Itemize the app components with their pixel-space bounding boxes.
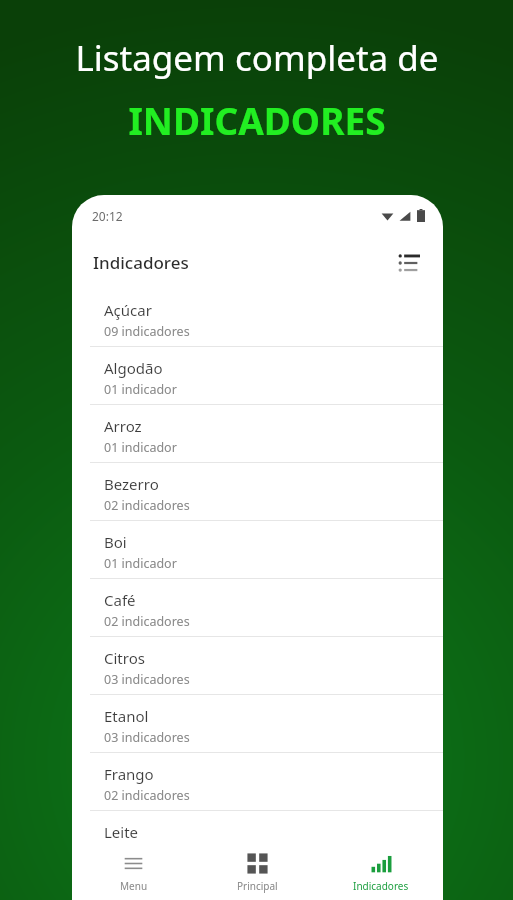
button[interactable]: Menu bbox=[72, 845, 195, 900]
button[interactable]: Indicadores bbox=[319, 845, 443, 900]
button[interactable]: Boi bbox=[72, 521, 443, 578]
staticText: INDICADORES bbox=[128, 95, 386, 145]
button[interactable]: Etanol bbox=[72, 695, 443, 752]
button[interactable]: Leite bbox=[72, 811, 443, 845]
staticText: 02 indicadores bbox=[104, 787, 190, 804]
button[interactable]: Ordenar lista bbox=[389, 243, 429, 283]
staticText: Citros bbox=[104, 648, 145, 668]
staticText: 02 indicadores bbox=[104, 497, 190, 514]
staticText: 02 indicadores bbox=[104, 613, 190, 630]
button[interactable]: Citros bbox=[72, 637, 443, 694]
staticText: 01 indicador bbox=[104, 439, 177, 456]
staticText: Açúcar bbox=[104, 300, 152, 320]
button[interactable]: Frango bbox=[72, 753, 443, 810]
button[interactable]: Principal bbox=[195, 845, 319, 900]
staticText: Café bbox=[104, 590, 136, 610]
staticText: Bezerro bbox=[104, 474, 159, 494]
staticText: Frango bbox=[104, 764, 154, 784]
staticText: 09 indicadores bbox=[104, 323, 190, 340]
button[interactable]: Bezerro bbox=[72, 463, 443, 520]
staticText: Boi bbox=[104, 532, 127, 552]
staticText: Leite bbox=[104, 822, 139, 842]
staticText: 01 indicador bbox=[104, 555, 177, 572]
staticText: Menu bbox=[120, 879, 148, 893]
staticText: 20:12 bbox=[92, 208, 123, 224]
button[interactable]: Algodão bbox=[72, 347, 443, 404]
staticText: Listagem completa de bbox=[75, 34, 439, 82]
staticText: Principal bbox=[237, 879, 278, 893]
staticText: Arroz bbox=[104, 416, 142, 436]
button[interactable]: Açúcar bbox=[72, 289, 443, 346]
staticText: 03 indicadores bbox=[104, 671, 190, 688]
staticText: 03 indicadores bbox=[104, 729, 190, 746]
staticText: Indicadores bbox=[93, 251, 189, 274]
staticText: Etanol bbox=[104, 706, 149, 726]
button[interactable]: Arroz bbox=[72, 405, 443, 462]
staticText: Algodão bbox=[104, 358, 163, 378]
button[interactable]: Café bbox=[72, 579, 443, 636]
staticText: 01 indicador bbox=[104, 381, 177, 398]
staticText: Indicadores bbox=[353, 879, 409, 893]
